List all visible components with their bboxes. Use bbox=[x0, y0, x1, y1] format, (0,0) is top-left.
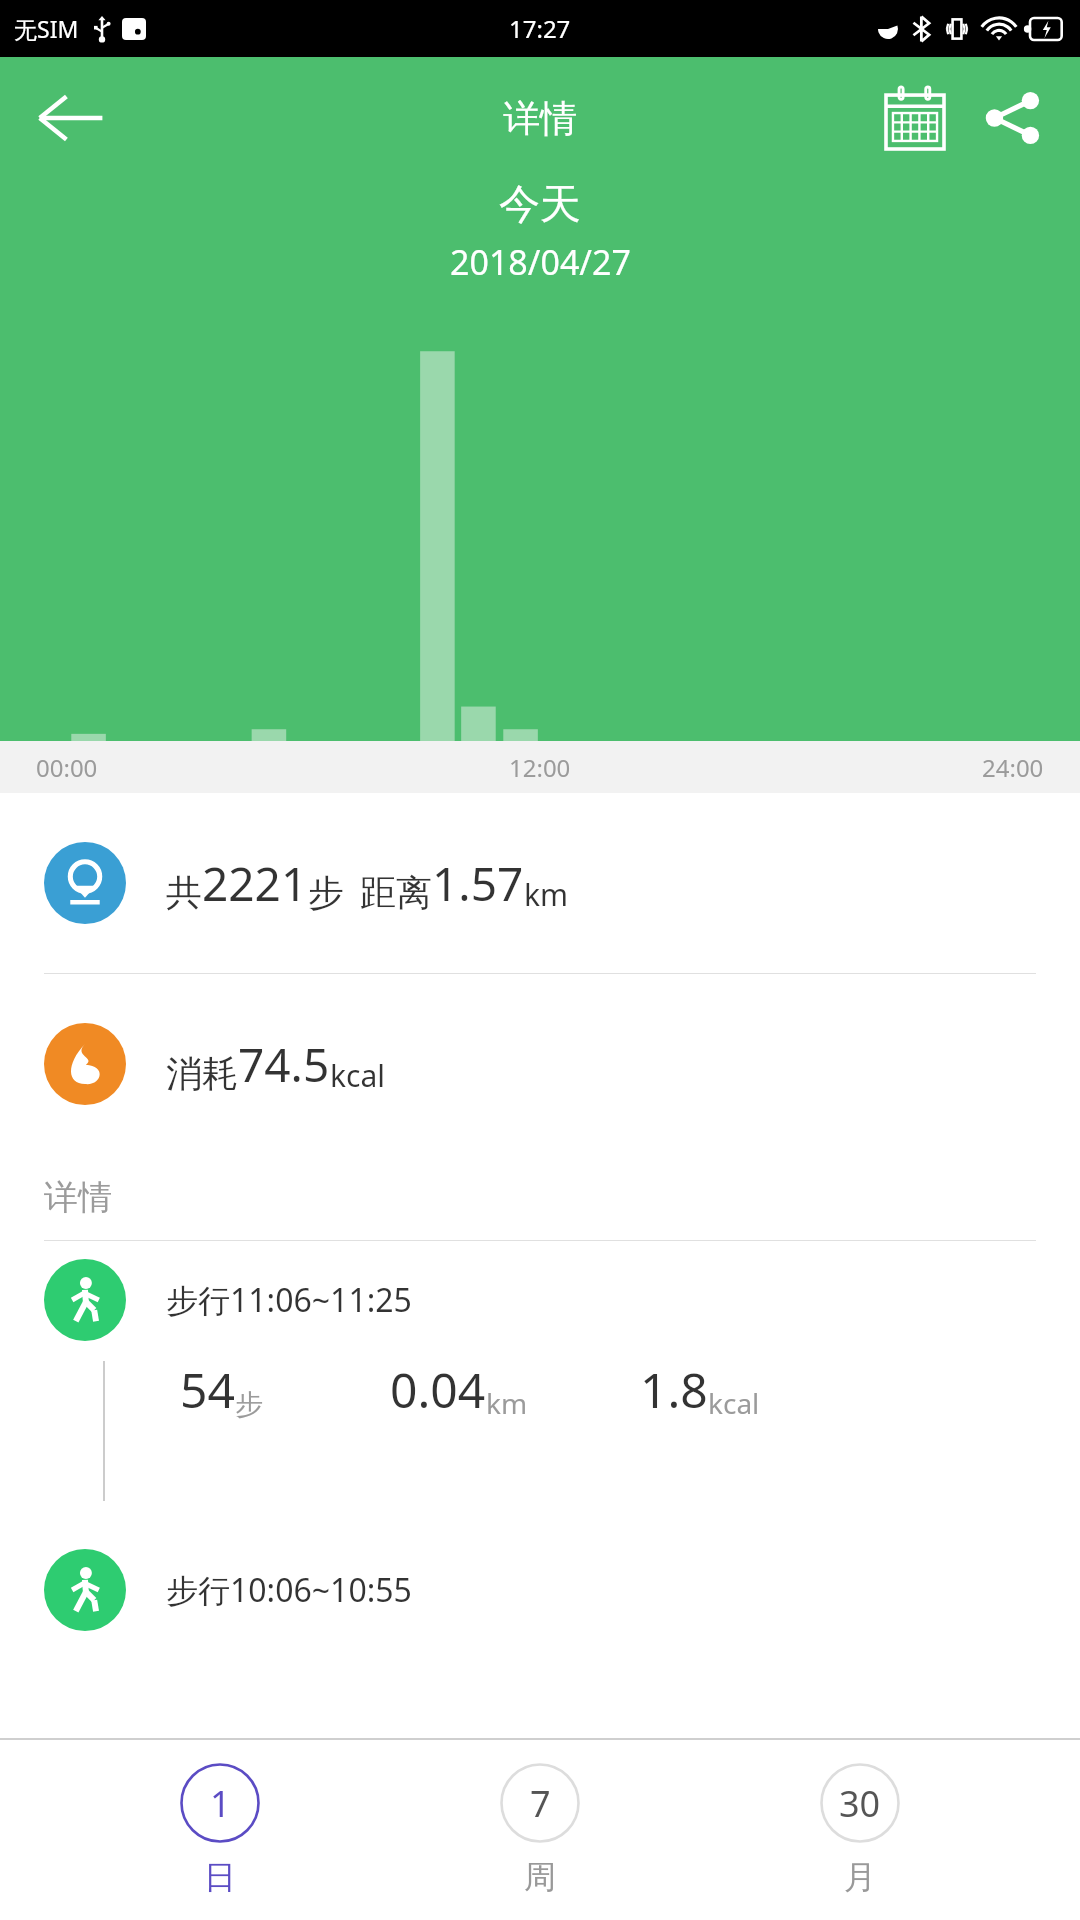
staticText: 步行11:06~11:25 bbox=[166, 1278, 412, 1322]
staticText: 74.5 bbox=[238, 1033, 330, 1096]
staticText: 17:27 bbox=[509, 12, 571, 45]
staticText: 30 bbox=[839, 1779, 881, 1828]
button[interactable]: Back bbox=[34, 82, 106, 154]
staticText: 无SIM bbox=[14, 13, 79, 44]
staticText: kcal bbox=[330, 1055, 385, 1096]
staticText: 步 bbox=[235, 1387, 263, 1422]
staticText: 详情 bbox=[44, 1176, 112, 1219]
staticText: 2221 bbox=[202, 852, 308, 915]
button[interactable]: Share bbox=[976, 81, 1050, 155]
staticText: 月 bbox=[844, 1857, 876, 1897]
staticText: 周 bbox=[524, 1857, 556, 1897]
staticText: 消耗 bbox=[166, 1051, 238, 1096]
button[interactable]: 30 bbox=[760, 1763, 960, 1897]
staticText: 54 bbox=[180, 1357, 235, 1422]
staticText: 1.57 bbox=[432, 852, 524, 915]
staticText: 今天 bbox=[499, 179, 581, 231]
staticText: km bbox=[524, 874, 569, 915]
staticText: 0.04 bbox=[390, 1357, 486, 1422]
staticText: 24:00 bbox=[982, 751, 1044, 784]
button[interactable]: 1 bbox=[120, 1763, 320, 1897]
staticText: 2018/04/27 bbox=[450, 239, 631, 285]
staticText: 00:00 bbox=[36, 751, 98, 784]
button[interactable]: 消耗 bbox=[0, 974, 1080, 1154]
staticText: km bbox=[486, 1384, 528, 1422]
staticText: 1 bbox=[210, 1779, 231, 1828]
staticText: 共 bbox=[166, 870, 202, 915]
staticText: 日 bbox=[204, 1857, 236, 1897]
button[interactable]: 步行11:06~11:25 bbox=[0, 1241, 1080, 1422]
staticText: 距离 bbox=[360, 870, 432, 915]
staticText: 1.8 bbox=[640, 1357, 708, 1422]
staticText: kcal bbox=[708, 1384, 760, 1422]
staticText: 步 bbox=[308, 870, 344, 915]
button[interactable]: 7 bbox=[440, 1763, 640, 1897]
staticText: 详情 bbox=[503, 95, 577, 142]
button[interactable]: Calendar bbox=[878, 81, 952, 155]
button[interactable]: 步行10:06~10:55 bbox=[0, 1501, 1080, 1631]
staticText: 7 bbox=[530, 1779, 551, 1828]
staticText: 12:00 bbox=[509, 751, 571, 784]
button[interactable]: 共 bbox=[0, 793, 1080, 973]
staticText: 步行10:06~10:55 bbox=[166, 1568, 412, 1612]
